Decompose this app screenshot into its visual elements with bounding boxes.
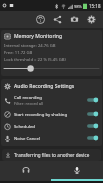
button[interactable]: Toggle <box>86 134 99 142</box>
button[interactable]: Noise Cancel <box>1 132 102 144</box>
staticText: Start recording by shaking <box>14 111 68 117</box>
button[interactable]: Playback <box>0 161 51 179</box>
staticText: Free: 11.72 GB <box>4 50 33 56</box>
button[interactable]: Start recording by shaking <box>1 108 102 120</box>
staticText: Audio Recording Settings <box>14 83 75 90</box>
button[interactable]: Audio Recording Settings <box>1 81 102 92</box>
button[interactable]: Help <box>32 11 49 28</box>
staticText: Noise Cancel <box>14 135 40 141</box>
staticText: Memory Monitoring <box>14 33 63 40</box>
staticText: 98% <box>74 4 82 9</box>
button[interactable]: Settings <box>83 11 100 28</box>
staticText: 15:18 <box>89 3 101 9</box>
staticText: Transferring files to another device <box>14 152 90 158</box>
button[interactable]: Screenshot <box>66 11 83 28</box>
button[interactable]: Lock threshold slider <box>4 64 99 73</box>
button[interactable]: Toggle <box>86 96 99 104</box>
staticText: Scheduled <box>14 123 35 129</box>
button[interactable]: Call recording <box>1 92 102 108</box>
staticText: Filter: record all <box>14 101 44 106</box>
button[interactable]: Memory Monitoring <box>1 30 102 76</box>
button[interactable]: Toggle <box>86 110 99 118</box>
button[interactable]: Share <box>49 11 66 28</box>
button[interactable]: Transferring files to another device <box>2 149 101 161</box>
staticText: Lock threshold = 22 % (5.45 GB) <box>4 57 66 63</box>
button[interactable]: Toggle <box>86 122 99 130</box>
button[interactable]: Recorder <box>51 161 103 179</box>
button[interactable]: Scheduled <box>1 120 102 132</box>
staticText: Call recording <box>14 94 42 100</box>
staticText: Internal storage: 24.76 GB <box>4 43 56 49</box>
